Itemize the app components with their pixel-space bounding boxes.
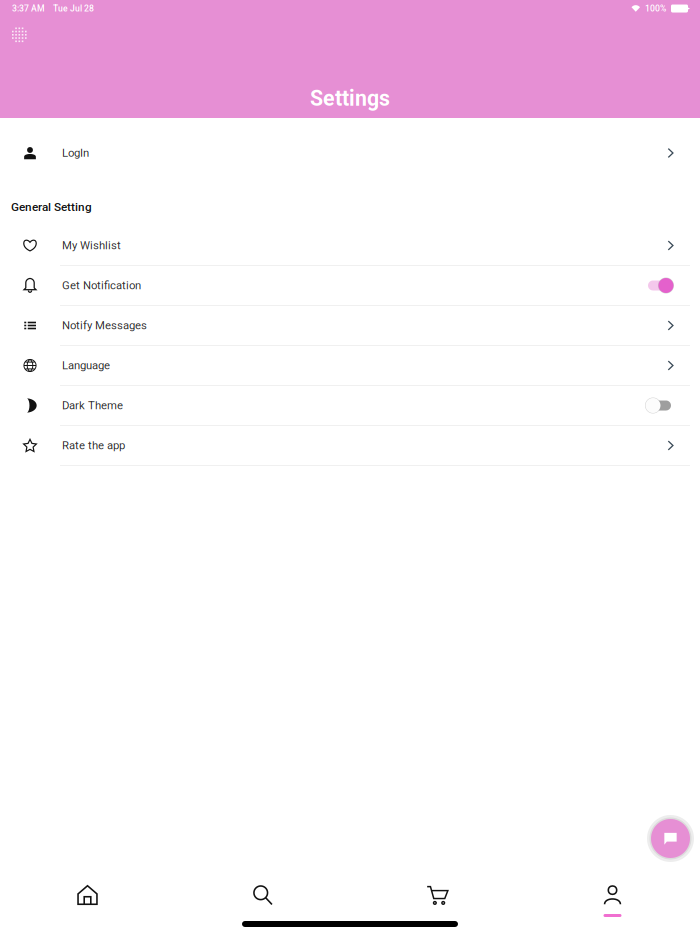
button[interactable]: Rate the app (0, 426, 700, 465)
button[interactable]: Home (0, 862, 175, 921)
button[interactable]: My Wishlist (0, 226, 700, 265)
staticText: Get Notification (62, 279, 141, 292)
button[interactable]: Profile (525, 862, 700, 921)
button[interactable]: Search (175, 862, 350, 921)
staticText: Settings (310, 86, 390, 111)
staticText: Rate the app (62, 439, 125, 452)
staticText: LogIn (62, 146, 89, 160)
staticText: Language (62, 359, 110, 372)
button[interactable]: Get Notification (0, 266, 700, 305)
staticText: General Setting (11, 200, 92, 214)
button[interactable]: Dark Theme (0, 386, 700, 425)
button[interactable]: Language (0, 346, 700, 385)
staticText: Notify Messages (62, 319, 147, 332)
button[interactable]: Notify Messages (0, 306, 700, 345)
button[interactable]: Cart (350, 862, 525, 921)
staticText: 3:37 AM (12, 3, 45, 14)
button[interactable]: Chat (647, 815, 694, 862)
staticText: My Wishlist (62, 239, 121, 252)
staticText: 100% (645, 3, 666, 14)
staticText: Dark Theme (62, 399, 123, 412)
staticText: Tue Jul 28 (53, 3, 94, 14)
button[interactable]: LogIn (0, 118, 700, 188)
